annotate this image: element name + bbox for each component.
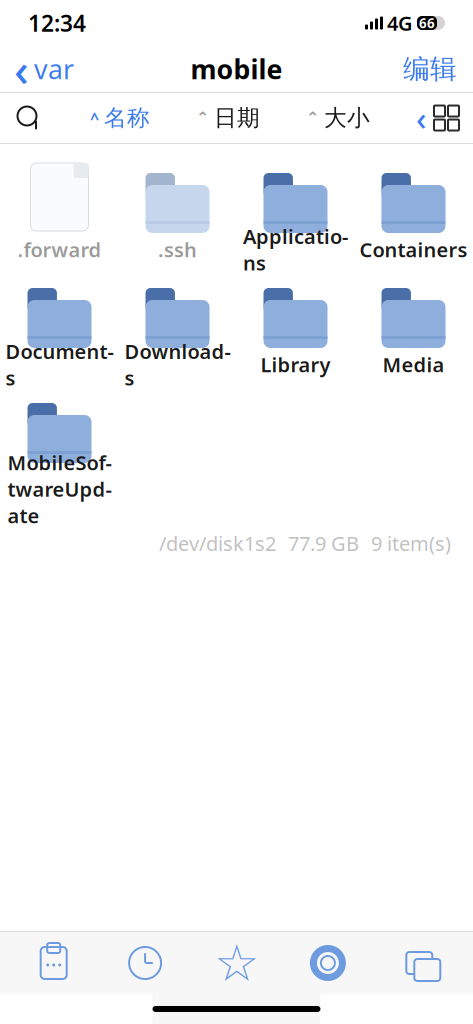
button[interactable]: Documents [0,273,118,378]
button[interactable]: Favorites [191,943,282,983]
button[interactable]: ‹ [0,35,88,103]
button[interactable]: ^ [80,98,160,138]
staticText: .ssh [158,236,197,263]
staticText: 77.9 GB [288,530,359,557]
button[interactable]: 编辑 [387,49,473,89]
button[interactable]: Settings [282,943,374,983]
staticText: ☆ [214,934,259,992]
button[interactable]: ⌃ [186,98,270,138]
staticText: 日期 [214,104,260,132]
staticText: ⌃ [306,109,319,127]
staticText: ‹ [416,97,426,139]
button[interactable]: MobileSoftwareUpdate [0,388,118,512]
button[interactable]: ⌃ [296,98,380,138]
staticText: Downloads [124,338,230,391]
staticText: 12:34 [28,8,86,38]
staticText: ^ [90,107,99,129]
button[interactable]: .forward [0,158,118,263]
staticText: ‹ [14,39,29,99]
button[interactable]: Recents [99,943,191,983]
button[interactable]: Downloads [118,273,236,378]
staticText: Media [382,351,444,378]
staticText: Library [260,351,330,378]
staticText: mobile [190,51,282,87]
button[interactable]: Windows [374,943,465,983]
button[interactable]: Media [354,273,472,378]
button[interactable]: Library [236,273,354,378]
staticText: MobileSoftwareUpdate [7,449,111,529]
staticText: /dev/disk1s2 [159,530,276,557]
button[interactable]: .ssh [118,158,236,263]
staticText: .forward [17,236,101,263]
staticText: Containers [359,236,467,263]
staticText: 编辑 [403,53,457,85]
staticText: 大小 [324,104,370,132]
staticText: 名称 [104,104,150,132]
button[interactable]: Grid view [406,93,469,143]
staticText: var [34,51,74,87]
staticText: 9 item(s) [371,530,451,557]
staticText: Documents [5,338,113,391]
button[interactable]: Applications [236,158,354,263]
button[interactable]: Clipboard [8,943,99,983]
staticText: 4G [387,10,413,36]
button[interactable]: Containers [354,158,472,263]
staticText: Applications [243,223,348,276]
button[interactable] [4,101,54,135]
staticText: ⌃ [196,109,209,127]
staticText: 66 [419,14,435,32]
